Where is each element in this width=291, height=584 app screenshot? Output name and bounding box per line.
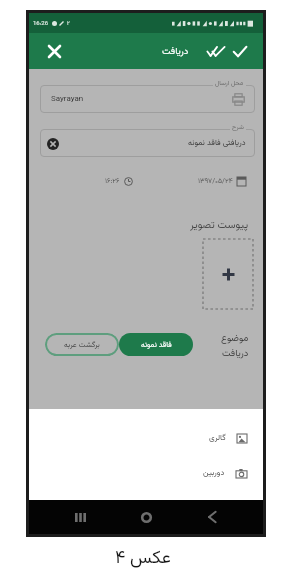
staticText: شرح	[232, 122, 244, 132]
staticText: ۱۶:۲۶	[105, 176, 120, 187]
staticText: ۱۳۹۷/۰۵/۲۴	[198, 176, 233, 187]
staticText: دوربین	[203, 467, 225, 480]
button[interactable]: Clear	[46, 137, 59, 150]
staticText: ۲	[67, 20, 70, 28]
staticText: Sayrayan	[51, 93, 84, 106]
staticText: پیوست تصویر	[190, 217, 249, 233]
button[interactable]: Home	[131, 502, 161, 532]
button[interactable]: Scan	[231, 92, 245, 106]
button[interactable]: Recents	[65, 502, 95, 532]
button[interactable]: Save	[230, 41, 250, 61]
button[interactable]: Add image	[203, 239, 253, 309]
staticText: گالری	[209, 432, 226, 445]
staticText: برگشت عربه	[64, 339, 100, 351]
staticText: دریافت	[222, 346, 249, 361]
button[interactable]: برگشت عربه	[45, 333, 119, 356]
staticText: موضوع	[221, 331, 249, 346]
button[interactable]: گالری	[209, 428, 247, 448]
staticText: محل ارسال	[215, 78, 244, 88]
button[interactable]: Sayrayan	[40, 85, 255, 113]
button[interactable]: دوربین	[203, 463, 247, 483]
button[interactable]: Close	[41, 38, 67, 64]
button[interactable]: فاقد نمونه	[119, 333, 193, 356]
staticText: دریافتی فاقد نمونه	[188, 137, 246, 150]
staticText: 16:26	[33, 19, 49, 28]
button[interactable]: دریافتی فاقد نمونه	[40, 129, 255, 157]
button[interactable]: ۱۳۹۷/۰۵/۲۴	[198, 174, 246, 189]
staticText: عکس ۴	[115, 545, 171, 573]
button[interactable]: Back	[197, 502, 227, 532]
button[interactable]: ۱۶:۲۶	[105, 174, 133, 189]
button[interactable]: Save and add new	[204, 40, 227, 63]
staticText: دریافت	[162, 44, 189, 59]
staticText: فاقد نمونه	[141, 339, 172, 351]
